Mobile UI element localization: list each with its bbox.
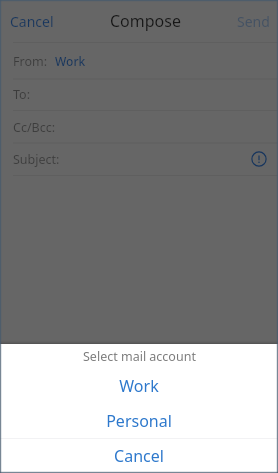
staticText: Work [55, 53, 86, 69]
staticText: Send [237, 12, 270, 31]
staticText: Compose [110, 10, 181, 32]
staticText: Subject: [13, 151, 60, 168]
staticText: Select mail account [83, 348, 196, 365]
staticText: Work [119, 375, 159, 397]
button[interactable]: Send [227, 3, 278, 40]
staticText: Cancel [114, 445, 164, 467]
button[interactable]: To: [0, 79, 278, 110]
button[interactable]: Information [250, 150, 268, 168]
button[interactable]: Work [0, 368, 278, 403]
button[interactable]: Personal [0, 403, 278, 438]
button[interactable]: Cancel [0, 3, 64, 40]
button[interactable]: From: [0, 43, 278, 79]
button[interactable]: Subject: [0, 143, 278, 175]
button[interactable]: Cc/Bcc: [0, 111, 278, 143]
staticText: Cc/Bcc: [13, 119, 56, 136]
staticText: Cancel [10, 12, 54, 31]
staticText: Personal [106, 410, 172, 432]
staticText: To: [13, 86, 30, 103]
staticText: From: [13, 53, 48, 70]
button[interactable]: Cancel [0, 439, 278, 473]
